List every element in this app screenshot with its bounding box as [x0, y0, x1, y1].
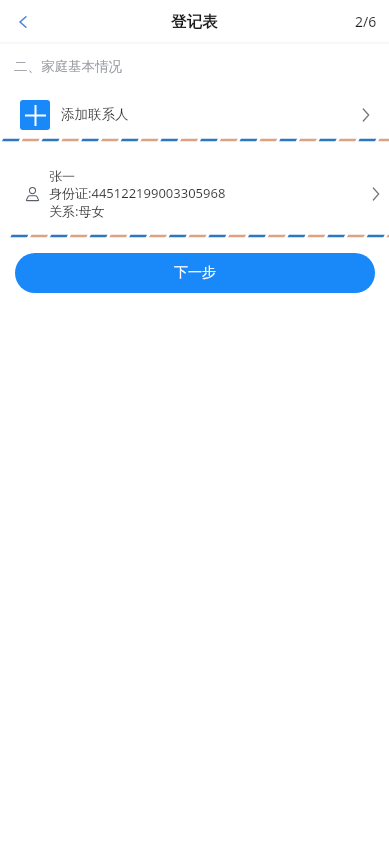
staticText: 张一	[49, 168, 75, 184]
staticText: 二、家庭基本情况	[14, 58, 122, 75]
staticText: 身份证:445122199003305968	[49, 184, 226, 202]
button[interactable]: 下一步	[15, 253, 375, 293]
button[interactable]: 张一	[0, 164, 389, 224]
staticText: 添加联系人	[61, 106, 129, 123]
staticText: 关系:母女	[49, 202, 105, 220]
button[interactable]: Back	[1, 0, 45, 44]
staticText: 登记表	[171, 12, 218, 32]
staticText: 下一步	[174, 264, 216, 282]
staticText: 2/6	[355, 12, 377, 31]
button[interactable]: 添加联系人	[0, 96, 389, 133]
